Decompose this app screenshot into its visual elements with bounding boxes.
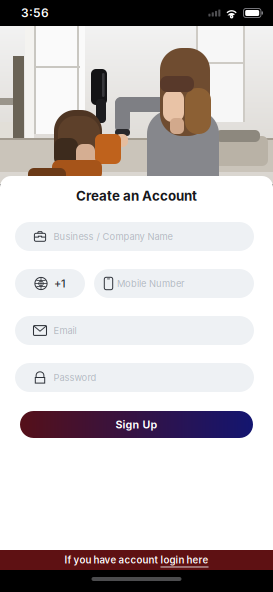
staticText: Mobile Number bbox=[117, 278, 185, 289]
button[interactable]: +1 bbox=[15, 269, 85, 298]
staticText: Sign Up bbox=[115, 418, 157, 431]
staticText: +1 bbox=[54, 277, 66, 290]
button[interactable]: Email bbox=[15, 316, 254, 345]
staticText: Business / Company Name bbox=[53, 231, 172, 242]
staticText: Email bbox=[53, 325, 76, 336]
staticText: 3:56 bbox=[21, 6, 49, 20]
staticText: Create an Account bbox=[76, 188, 197, 204]
staticText: Password bbox=[53, 372, 96, 383]
staticText: If you have account bbox=[64, 554, 157, 566]
button[interactable]: Sign Up bbox=[20, 411, 253, 438]
button[interactable]: Mobile Number bbox=[94, 269, 254, 298]
button[interactable]: Business / Company Name bbox=[15, 222, 254, 251]
button[interactable]: Password bbox=[15, 363, 254, 392]
staticText: login here bbox=[160, 554, 208, 566]
button[interactable]: If you have account bbox=[0, 550, 273, 570]
